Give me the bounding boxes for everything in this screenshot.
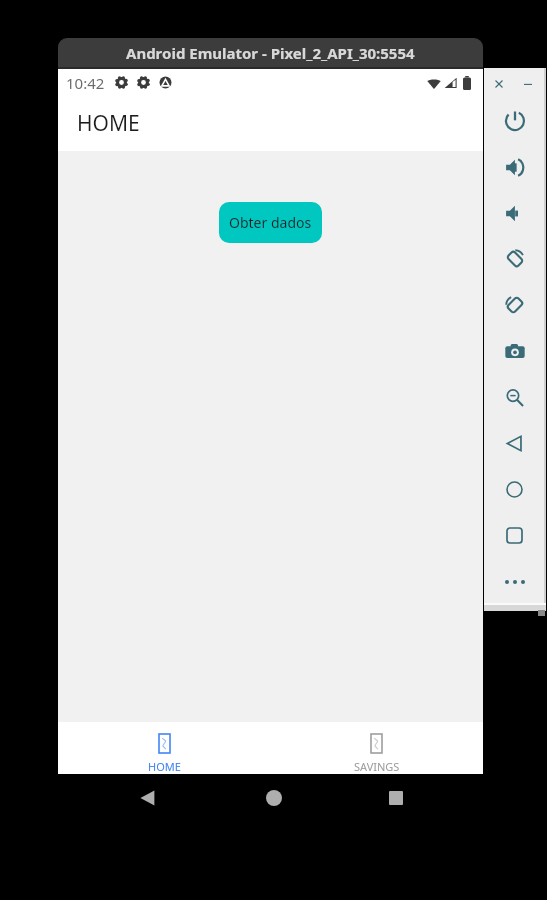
button[interactable]: Screenshot bbox=[484, 328, 545, 374]
staticText: 10:42 bbox=[66, 73, 105, 93]
staticText: Obter dados bbox=[229, 213, 312, 232]
button[interactable]: Home bbox=[266, 790, 282, 806]
button[interactable]: Zoom bbox=[484, 374, 545, 420]
button[interactable]: More bbox=[484, 558, 545, 604]
staticText: Android Emulator - Pixel_2_API_30:5554 bbox=[126, 43, 415, 63]
button[interactable]: Volume down bbox=[484, 190, 545, 236]
button[interactable]: Home bbox=[484, 466, 545, 512]
button[interactable]: Power bbox=[484, 98, 545, 144]
staticText: HOME bbox=[148, 759, 181, 774]
staticText: HOME bbox=[77, 109, 140, 138]
staticText: SAVINGS bbox=[354, 759, 400, 774]
button[interactable]: Minimize bbox=[524, 80, 532, 88]
button[interactable]: HOME bbox=[58, 722, 270, 774]
button[interactable]: Back bbox=[484, 420, 545, 466]
button[interactable]: SAVINGS bbox=[270, 722, 483, 774]
button[interactable]: Volume up bbox=[484, 144, 545, 190]
button[interactable]: Back bbox=[138, 788, 158, 808]
button[interactable]: Overview bbox=[484, 512, 545, 558]
button[interactable]: Recent apps bbox=[389, 791, 403, 805]
button[interactable]: Close bbox=[495, 80, 503, 88]
button[interactable]: Rotate left bbox=[484, 236, 545, 282]
button[interactable]: Obter dados bbox=[219, 202, 322, 243]
button[interactable]: Rotate right bbox=[484, 282, 545, 328]
